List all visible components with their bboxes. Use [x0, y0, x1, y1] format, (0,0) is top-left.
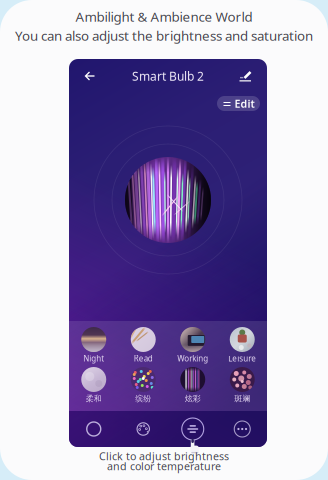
staticText: Working [177, 353, 208, 364]
button[interactable]: Read [118, 327, 168, 363]
staticText: 柔和 [86, 394, 102, 403]
button[interactable]: Power [69, 411, 118, 447]
button[interactable]: Rename [234, 65, 258, 87]
button[interactable]: More [217, 411, 267, 447]
button[interactable]: Leisure [217, 327, 267, 363]
staticText: Click to adjust brightness [99, 449, 229, 463]
button[interactable]: Back [78, 65, 102, 87]
staticText: 斑斓 [234, 394, 250, 403]
staticText: 炫彩 [185, 394, 201, 403]
button[interactable]: 柔和 [69, 367, 118, 403]
button[interactable]: Edit [217, 96, 260, 111]
staticText: Smart Bulb 2 [132, 68, 204, 84]
button[interactable]: 缤纷 [118, 367, 168, 403]
staticText: and color temperature [107, 459, 221, 473]
staticText: Ambilight & Ambience World [75, 8, 252, 25]
button[interactable]: 斑斓 [217, 367, 267, 403]
button[interactable]: Colour [118, 411, 168, 447]
staticText: Read [134, 353, 153, 364]
button[interactable]: Brightness and colour temperature [168, 411, 217, 447]
button[interactable]: Night [69, 327, 118, 363]
staticText: Night [83, 353, 104, 364]
button[interactable]: 炫彩 [168, 367, 217, 403]
staticText: Edit [234, 96, 254, 111]
staticText: Leisure [228, 353, 256, 364]
staticText: 缤纷 [135, 394, 151, 403]
staticText: You can also adjust the brightness and s… [15, 27, 313, 44]
button[interactable]: Working [168, 327, 217, 363]
